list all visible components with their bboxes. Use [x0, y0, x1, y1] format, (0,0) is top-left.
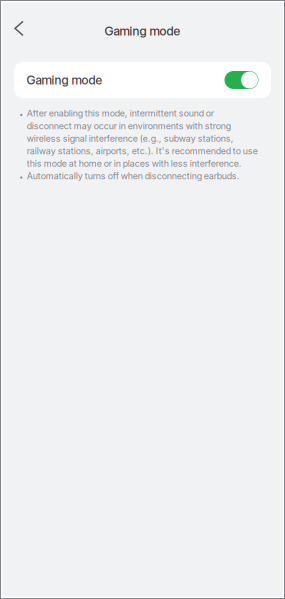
staticText: Gaming mode [26, 73, 102, 87]
staticText: railway stations, airports, etc.). It's … [27, 146, 258, 156]
staticText: Automatically turns off when disconnecti… [27, 171, 240, 181]
button[interactable]: Gaming mode [14, 62, 271, 98]
staticText: Gaming mode [104, 24, 180, 38]
staticText: After enabling this mode, intermittent s… [27, 108, 214, 119]
button[interactable]: Back [5, 16, 33, 46]
staticText: disconnect may occur in environments wit… [27, 120, 231, 131]
staticText: this mode at home or in places with less… [27, 158, 242, 169]
staticText: wireless signal interference (e.g., subw… [27, 133, 234, 144]
